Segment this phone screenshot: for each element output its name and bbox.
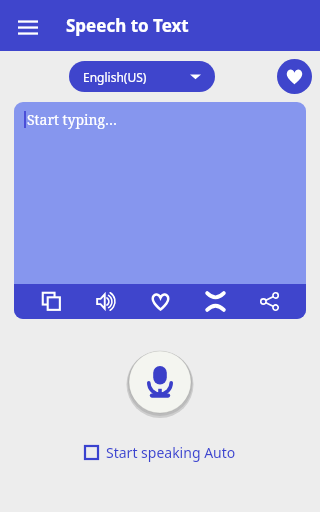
staticText: Speech to Text: [66, 14, 189, 37]
button[interactable]: Share: [251, 284, 287, 319]
staticText: Start typing…: [27, 110, 118, 129]
button[interactable]: Start speaking Auto: [78, 439, 242, 466]
staticText: Start speaking Auto: [106, 443, 236, 462]
button[interactable]: Start typing…: [14, 102, 306, 284]
staticText: English(US): [83, 69, 147, 85]
button[interactable]: Copy: [33, 284, 69, 319]
button[interactable]: Favourites: [277, 59, 312, 94]
button[interactable]: Start speech recognition: [125, 347, 195, 417]
button[interactable]: English(US): [69, 61, 215, 92]
button[interactable]: Favourite: [142, 284, 178, 319]
button[interactable]: Open navigation menu: [10, 8, 46, 44]
button[interactable]: Speak: [87, 284, 123, 319]
button[interactable]: Clear: [197, 284, 233, 319]
